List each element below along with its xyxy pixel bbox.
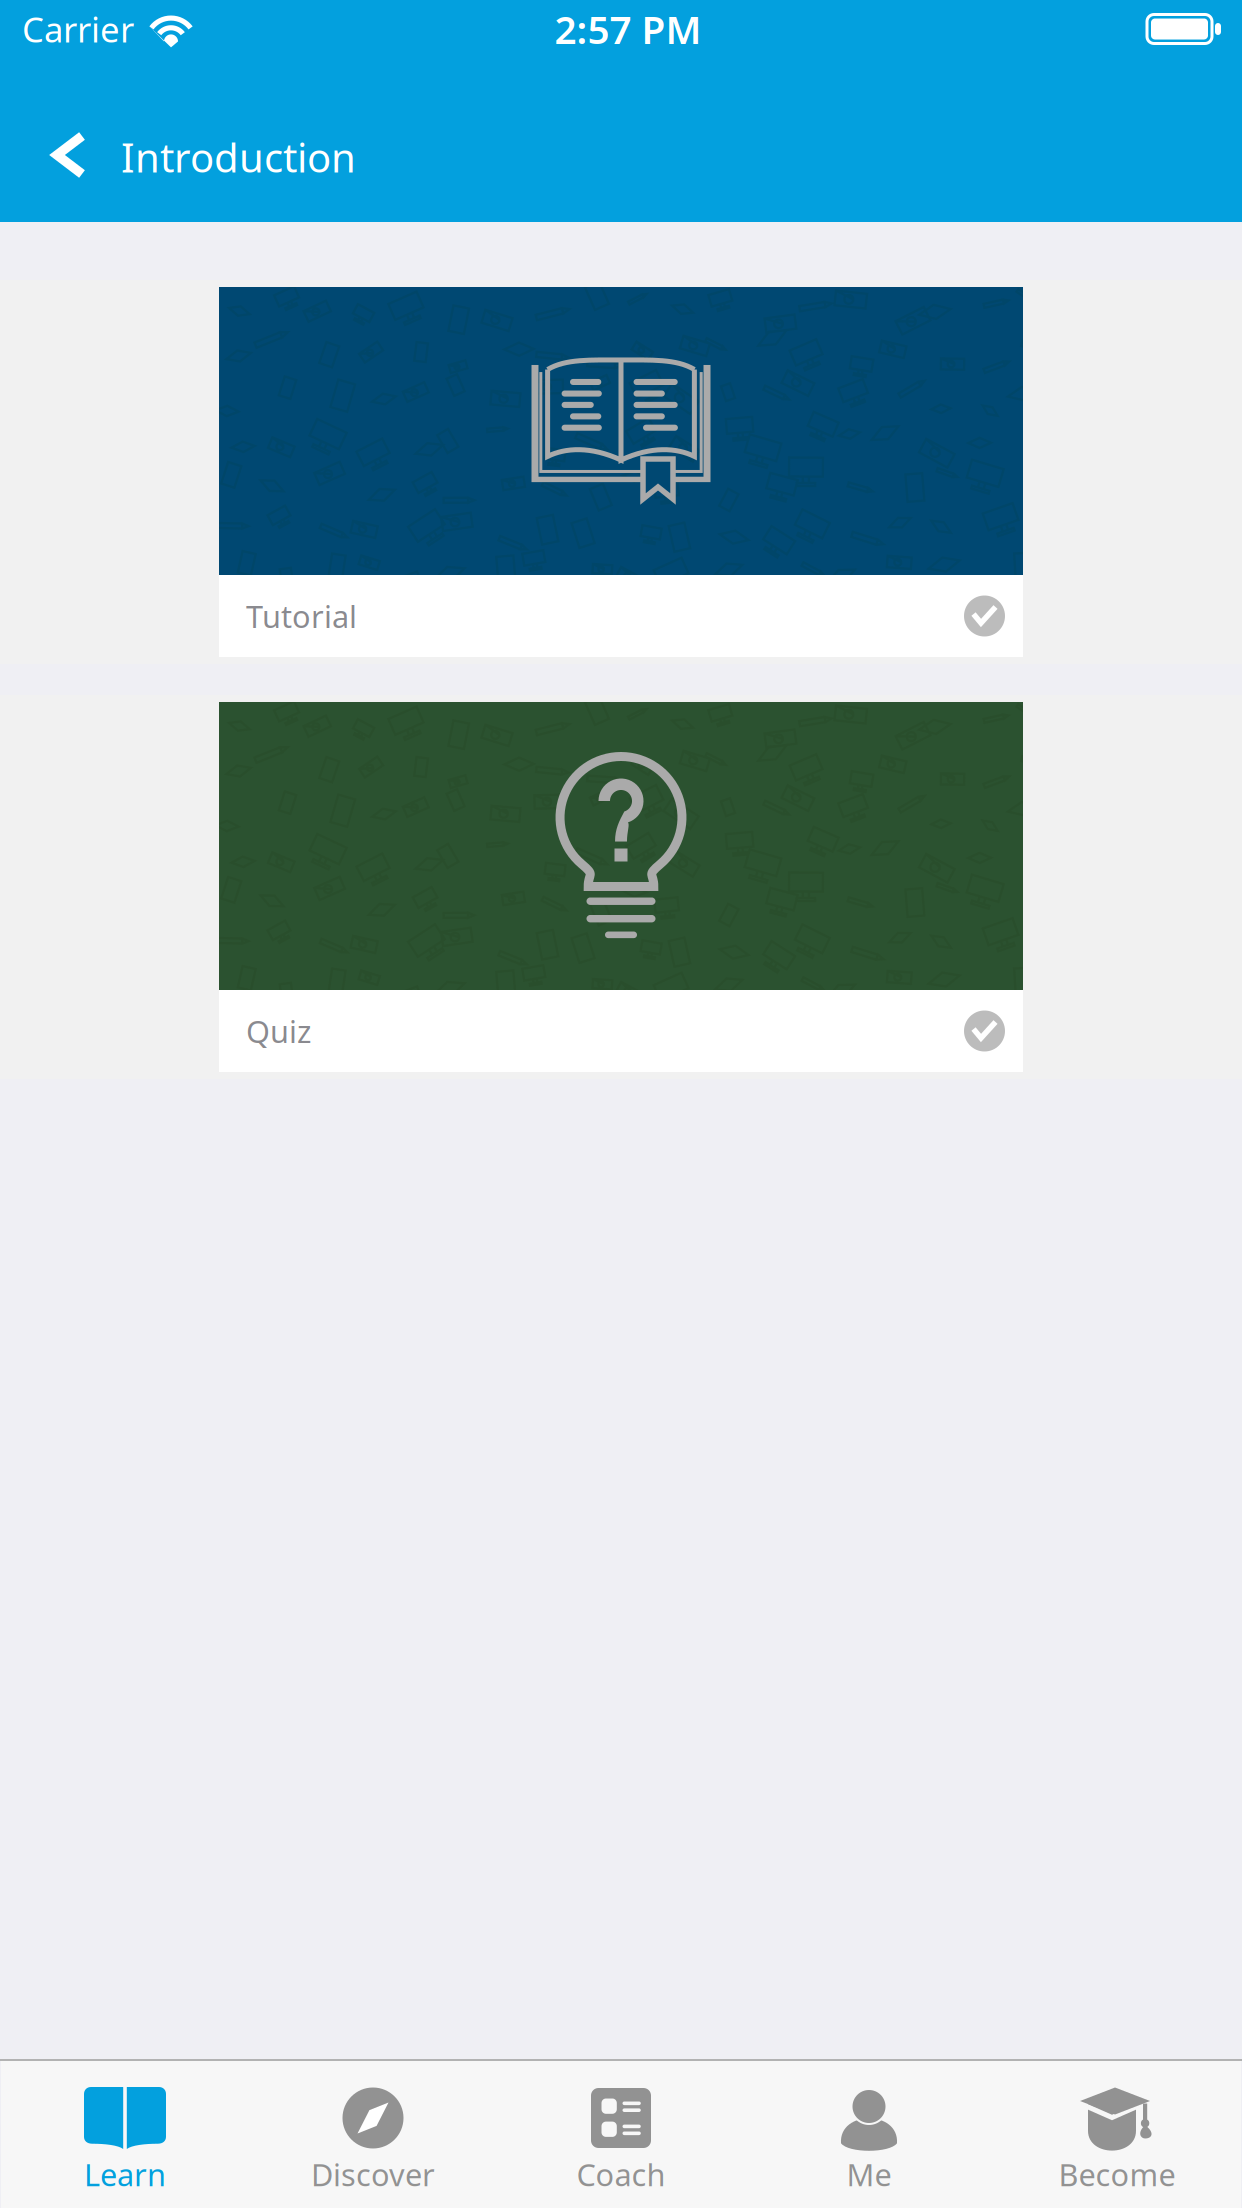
staticText: Me: [846, 2154, 891, 2195]
staticText: Learn: [84, 2154, 166, 2195]
button[interactable]: Me: [745, 2061, 993, 2208]
button[interactable]: Tutorial: [219, 287, 1023, 657]
staticText: 2:57 PM: [554, 3, 701, 55]
button[interactable]: Learn: [1, 2061, 249, 2208]
staticText: Discover: [311, 2154, 435, 2195]
button[interactable]: Back: [0, 87, 121, 195]
staticText: Introduction: [121, 130, 356, 183]
button[interactable]: Discover: [249, 2061, 497, 2208]
button[interactable]: Coach: [497, 2061, 745, 2208]
button[interactable]: Become: [993, 2061, 1241, 2208]
staticText: Carrier: [22, 6, 134, 52]
staticText: Become: [1058, 2154, 1175, 2195]
staticText: Tutorial: [246, 596, 357, 636]
button[interactable]: Quiz: [219, 702, 1023, 1072]
staticText: Quiz: [246, 1011, 311, 1051]
staticText: Coach: [576, 2154, 665, 2195]
